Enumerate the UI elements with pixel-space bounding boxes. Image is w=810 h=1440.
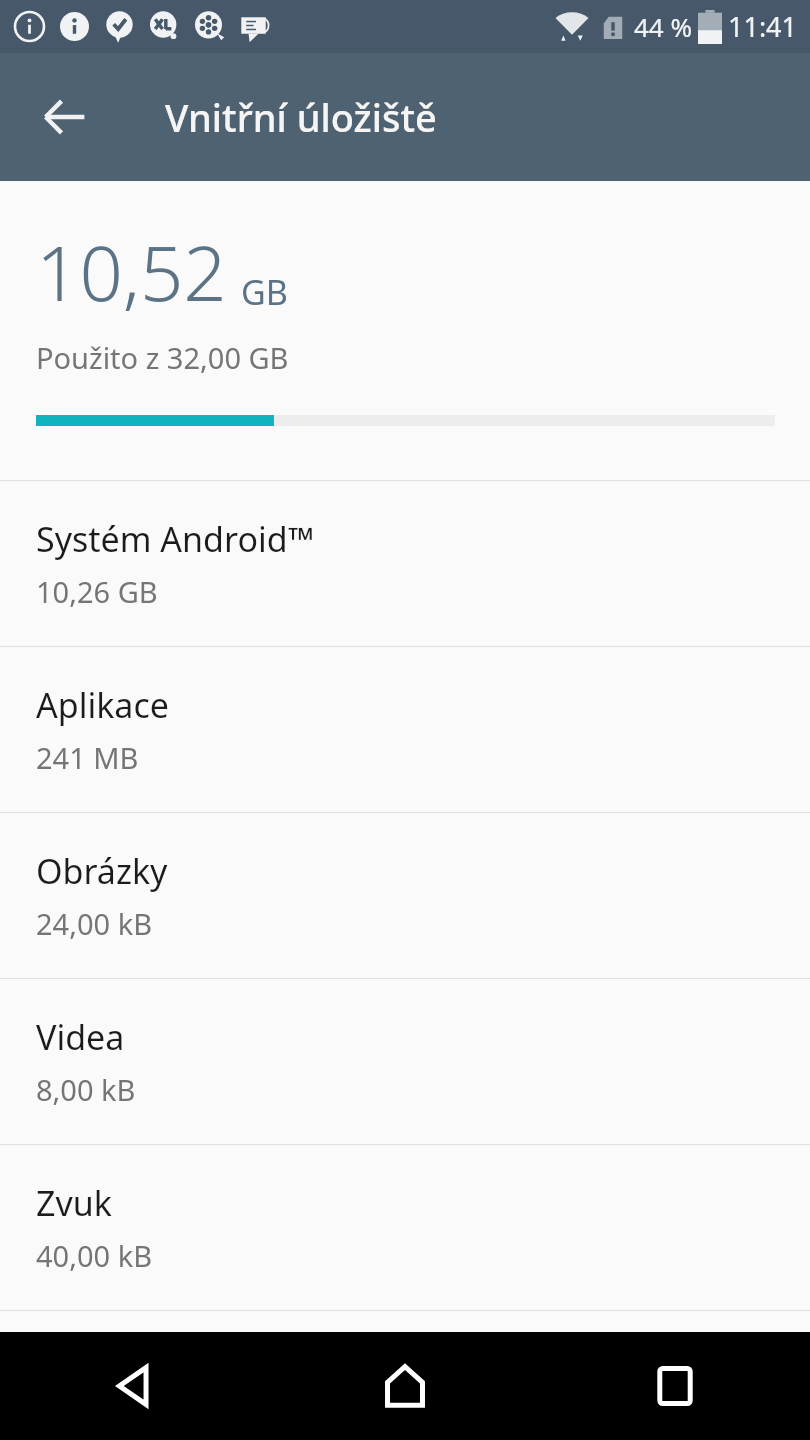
button[interactable]: Obrázky: [0, 813, 810, 978]
staticText: GB: [241, 269, 288, 315]
staticText: 40,00 kB: [36, 1236, 153, 1275]
button[interactable]: Domů: [270, 1332, 540, 1440]
staticText: Zvuk: [36, 1180, 112, 1226]
staticText: Systém Android™: [36, 516, 314, 562]
staticText: 10,52: [36, 220, 227, 324]
staticText: 11:41: [728, 8, 798, 45]
staticText: 44 %: [634, 9, 693, 44]
staticText: 8,00 kB: [36, 1070, 136, 1109]
button[interactable]: Přehled: [540, 1332, 810, 1440]
staticText: Vnitřní úložiště: [165, 91, 437, 143]
button[interactable]: Zpět: [22, 74, 108, 160]
staticText: 241 MB: [36, 738, 139, 777]
button[interactable]: Zpět: [0, 1332, 270, 1440]
button[interactable]: Videa: [0, 979, 810, 1144]
button[interactable]: Aplikace: [0, 647, 810, 812]
button[interactable]: Zvuk: [0, 1145, 810, 1310]
staticText: Použito z 32,00 GB: [36, 338, 289, 377]
staticText: 10,26 GB: [36, 572, 158, 611]
staticText: 24,00 kB: [36, 904, 153, 943]
staticText: Aplikace: [36, 682, 169, 728]
staticText: Obrázky: [36, 848, 168, 894]
button[interactable]: Systém Android™: [0, 481, 810, 646]
staticText: Videa: [36, 1014, 125, 1060]
